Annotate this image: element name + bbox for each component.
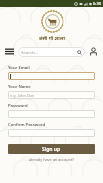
button[interactable]: e.g. John Doe xyxy=(8,91,95,99)
staticText: Confirm Password xyxy=(8,122,46,128)
button[interactable] xyxy=(8,129,95,137)
button[interactable] xyxy=(8,72,95,80)
staticText: Your Email xyxy=(8,65,30,71)
button[interactable]: Sign up xyxy=(8,144,95,154)
staticText: Password xyxy=(8,103,28,109)
staticText: Search... xyxy=(21,49,77,55)
staticText: Sign up xyxy=(42,146,61,153)
button[interactable] xyxy=(8,110,95,118)
staticText: e.g. John Doe xyxy=(10,93,35,98)
button[interactable]: already have an account? xyxy=(29,157,74,162)
button[interactable]: Account xyxy=(87,45,100,58)
button[interactable]: Open navigation menu xyxy=(3,45,16,58)
staticText: Your Name xyxy=(8,84,31,90)
staticText: 6:30 xyxy=(93,1,101,6)
staticText: बंसी गौ शाला xyxy=(39,35,65,42)
button[interactable]: Search... xyxy=(18,47,85,57)
